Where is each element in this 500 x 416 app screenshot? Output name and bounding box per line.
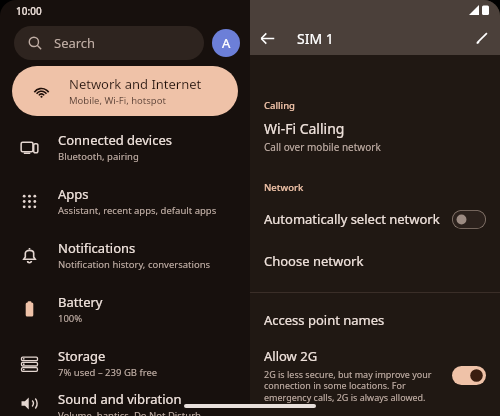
staticText: 2G is less secure, but may improve your … <box>264 368 442 404</box>
staticText: Calling <box>264 99 296 112</box>
staticText: Volume, haptics, Do Not Disturb <box>58 409 201 416</box>
button[interactable]: Connected devices <box>0 120 250 174</box>
button[interactable]: Back <box>250 21 284 55</box>
staticText: SIM 1 <box>297 29 334 48</box>
button[interactable]: Automatically select network <box>250 202 500 236</box>
button[interactable]: Wi-Fi Calling <box>250 116 500 157</box>
staticText: Connected devices <box>58 131 172 149</box>
button[interactable]: Search <box>14 26 204 60</box>
staticText: Choose network <box>264 252 364 270</box>
staticText: Wi-Fi Calling <box>264 119 345 138</box>
button[interactable]: Battery <box>0 282 250 336</box>
staticText: Notification history, conversations <box>58 258 211 271</box>
button[interactable]: Allow 2G <box>250 347 500 404</box>
staticText: Access point names <box>264 311 385 329</box>
button[interactable]: Network and Internet <box>12 66 238 116</box>
staticText: Automatically select network <box>264 210 452 228</box>
staticText: Call over mobile network <box>264 140 381 154</box>
staticText: Notifications <box>58 239 136 257</box>
staticText: Assistant, recent apps, default apps <box>58 204 217 217</box>
staticText: Search <box>54 34 96 52</box>
button[interactable]: Edit <box>464 21 500 55</box>
staticText: Storage <box>58 347 106 365</box>
staticText: Battery <box>58 293 103 311</box>
button[interactable]: Apps <box>0 174 250 228</box>
button[interactable]: Account <box>212 29 240 57</box>
button[interactable]: On <box>452 366 486 385</box>
button[interactable]: Storage <box>0 336 250 390</box>
staticText: Mobile, Wi-Fi, hotspot <box>69 94 166 107</box>
staticText: Apps <box>58 185 89 203</box>
button[interactable]: Off <box>452 210 486 229</box>
staticText: 100% <box>58 312 83 325</box>
staticText: Bluetooth, pairing <box>58 150 139 163</box>
staticText: 10:00 <box>16 4 42 18</box>
staticText: 7% used – 239 GB free <box>58 366 158 379</box>
staticText: Network <box>264 181 304 194</box>
button[interactable]: Choose network <box>250 246 500 276</box>
staticText: Network and Internet <box>69 75 202 93</box>
staticText: Sound and vibration <box>58 390 182 408</box>
staticText: A <box>222 34 231 52</box>
button[interactable]: Sound and vibration <box>0 390 250 416</box>
button[interactable]: Access point names <box>250 307 500 333</box>
staticText: Allow 2G <box>264 347 318 365</box>
button[interactable]: Notifications <box>0 228 250 282</box>
